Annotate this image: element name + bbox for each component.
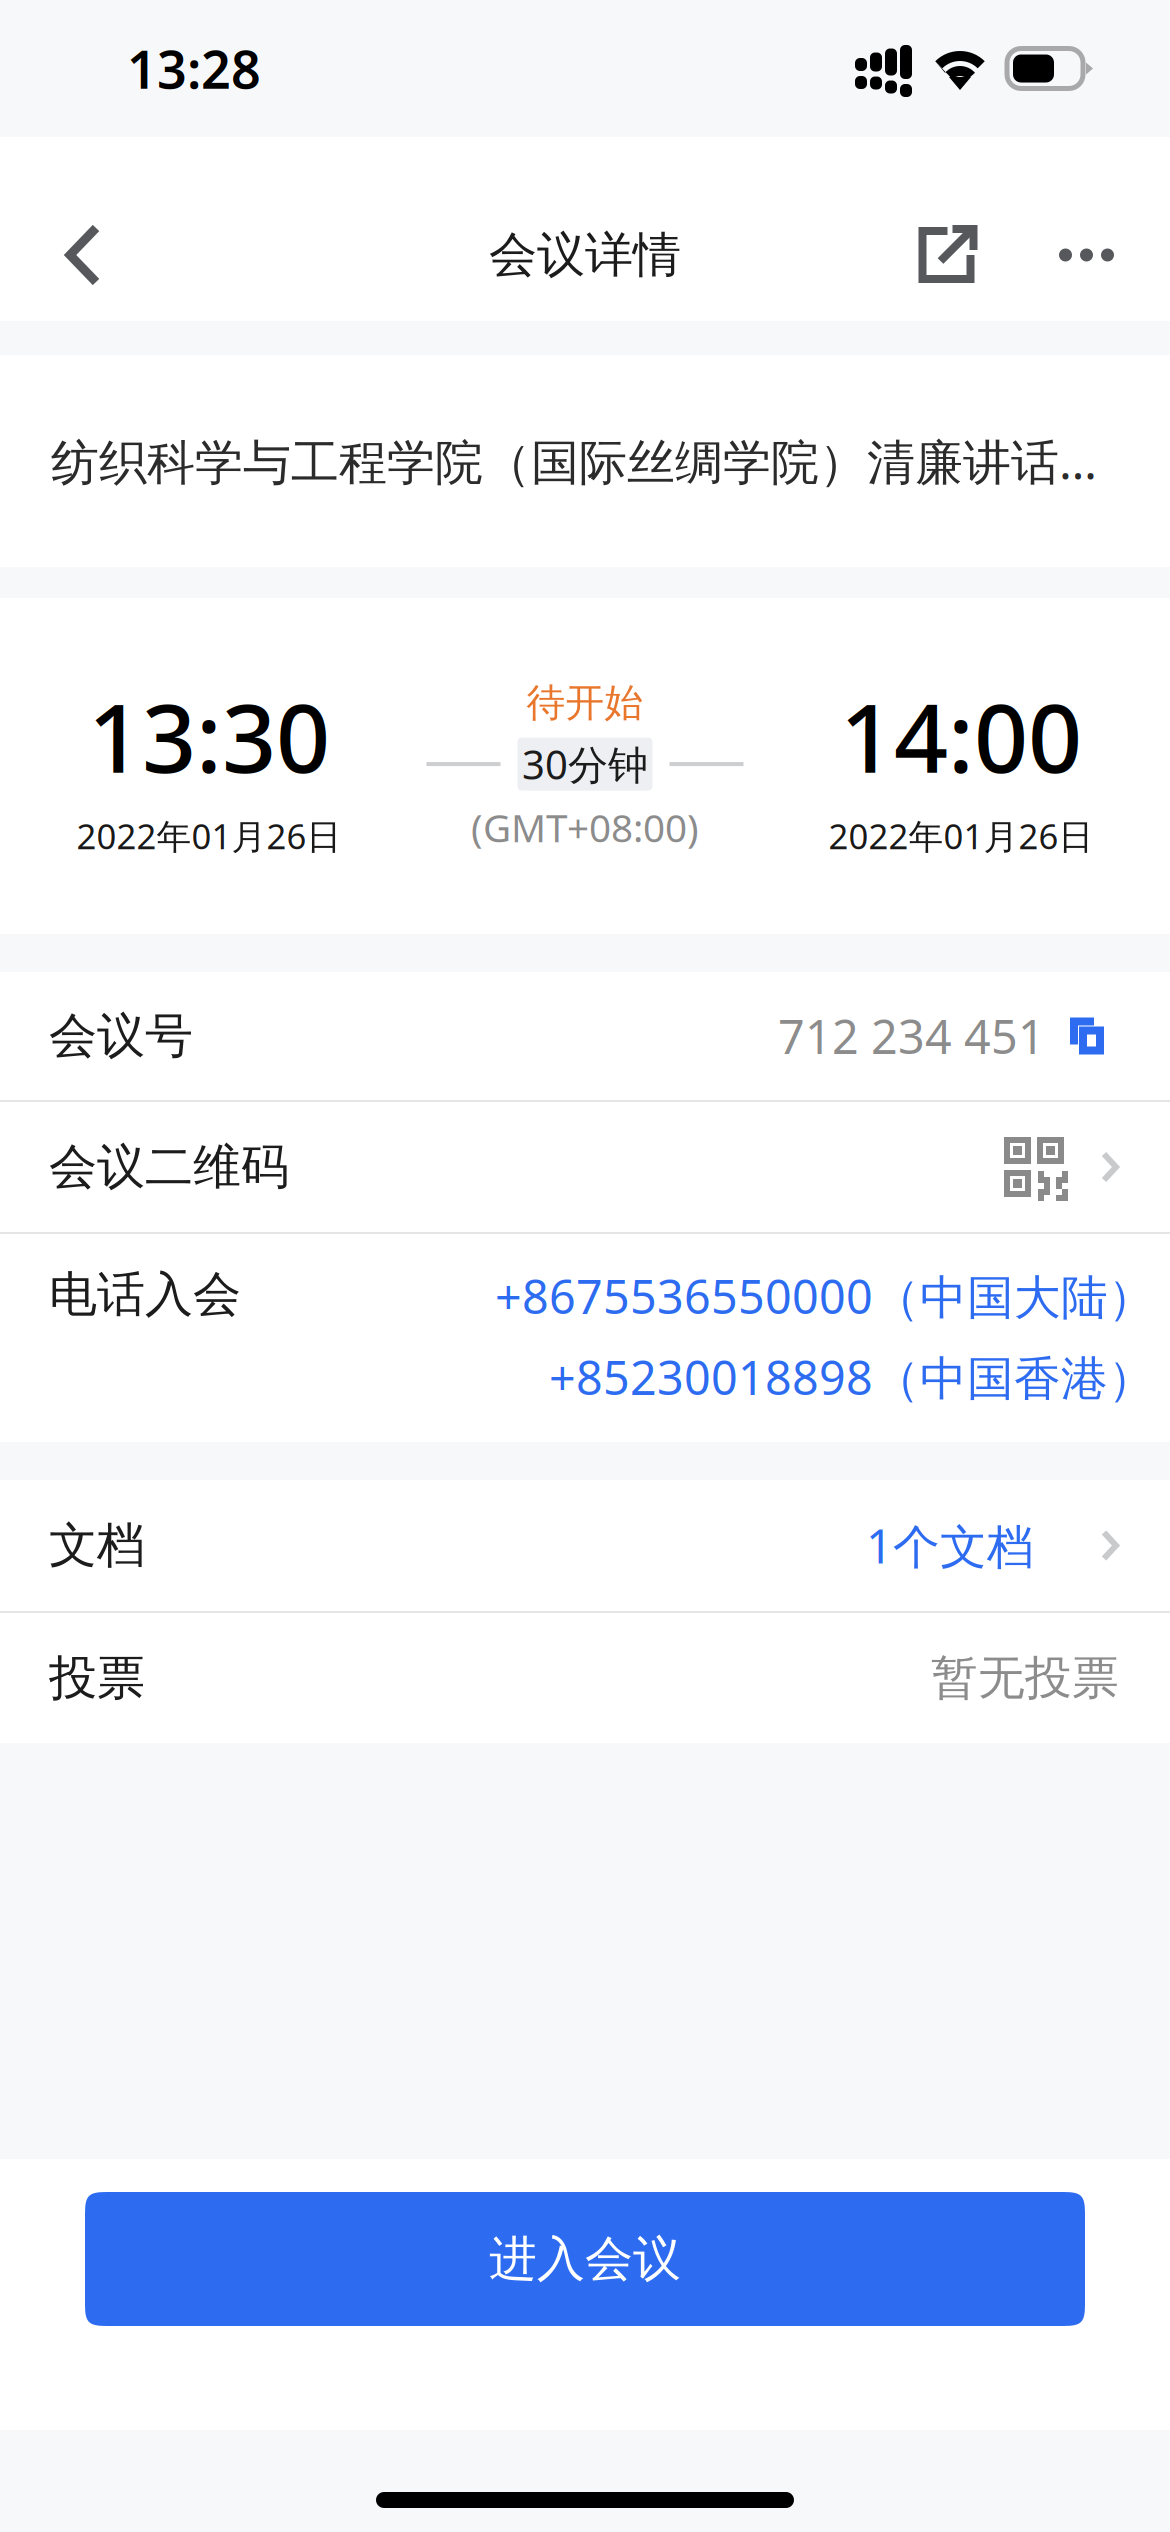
- button[interactable]: +8675536550000（中国大陆）: [495, 1265, 1155, 1327]
- staticText: +8675536550000（中国大陆）: [495, 1265, 1155, 1327]
- staticText: 会议二维码: [49, 1137, 289, 1196]
- staticText: 待开始: [526, 679, 643, 727]
- button[interactable]: 返回: [18, 163, 148, 347]
- button[interactable]: 更多: [1007, 163, 1144, 347]
- button[interactable]: +85230018898（中国香港）: [549, 1346, 1155, 1408]
- staticText: 电话入会: [49, 1265, 241, 1324]
- staticText: (GMT+08:00): [471, 802, 699, 853]
- staticText: 13:30: [88, 673, 330, 799]
- button[interactable]: 会议号: [0, 972, 1170, 1100]
- staticText: 13:28: [127, 34, 261, 103]
- button[interactable]: 文档: [0, 1480, 1170, 1611]
- button[interactable]: 进入会议: [85, 2192, 1085, 2326]
- staticText: 暂无投票: [931, 1649, 1119, 1707]
- staticText: 会议详情: [489, 225, 681, 284]
- staticText: 会议号: [49, 1006, 193, 1065]
- button[interactable]: 会议二维码: [0, 1102, 1170, 1232]
- staticText: 投票: [49, 1648, 145, 1707]
- staticText: 纺织科学与工程学院（国际丝绸学院）清廉讲话…: [51, 429, 1097, 493]
- staticText: 2022年01月26日: [76, 813, 341, 859]
- button[interactable]: 分享: [889, 163, 1007, 347]
- staticText: 712 234 451: [778, 1005, 1045, 1067]
- staticText: 进入会议: [489, 2229, 681, 2288]
- staticText: +85230018898（中国香港）: [549, 1346, 1155, 1408]
- staticText: 1个文档: [866, 1514, 1034, 1576]
- staticText: 2022年01月26日: [828, 813, 1093, 859]
- staticText: 文档: [49, 1516, 145, 1575]
- staticText: 14:00: [840, 673, 1082, 799]
- staticText: 30分钟: [522, 737, 648, 791]
